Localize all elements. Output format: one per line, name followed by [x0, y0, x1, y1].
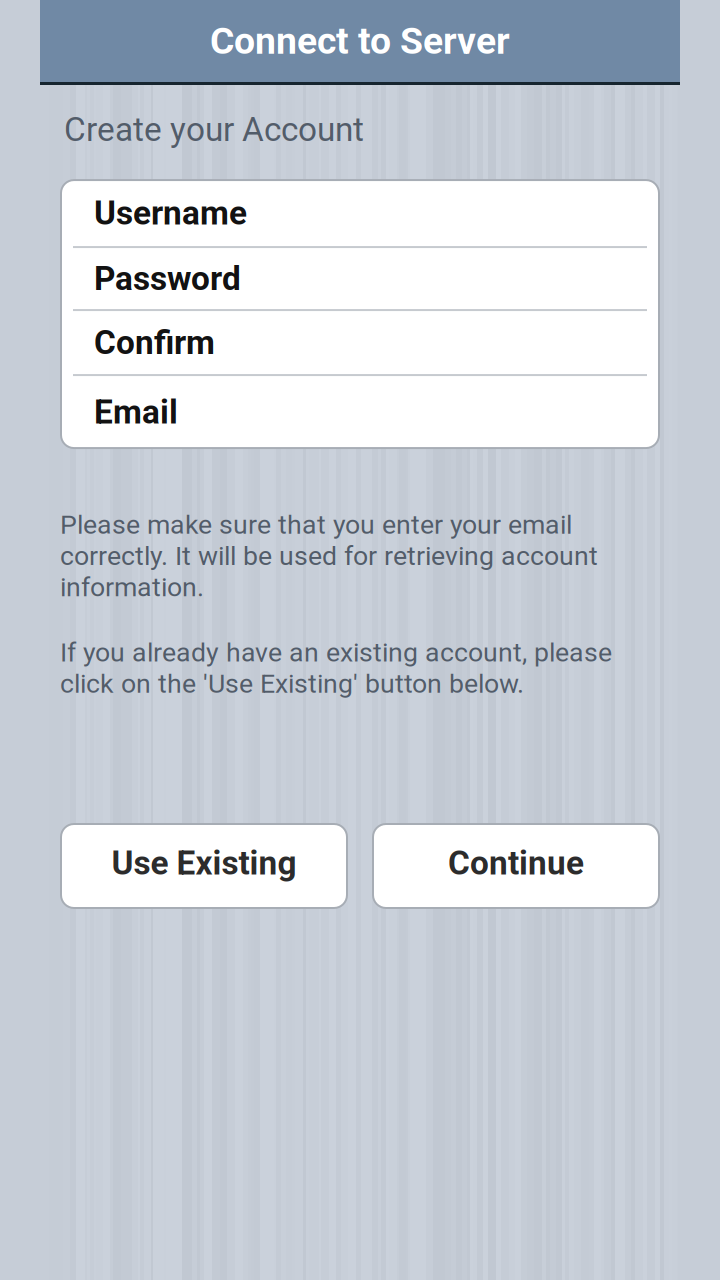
- staticText: Use Existing: [111, 843, 296, 883]
- button[interactable]: Username: [61, 180, 659, 246]
- staticText: Please make sure that you enter your ema…: [60, 509, 598, 603]
- staticText: Email: [94, 392, 178, 432]
- button[interactable]: Password: [61, 248, 659, 309]
- button[interactable]: Email: [61, 376, 659, 448]
- staticText: If you already have an existing account,…: [60, 637, 612, 699]
- button[interactable]: Continue: [373, 824, 659, 908]
- staticText: Create your Account: [64, 110, 364, 149]
- button[interactable]: Use Existing: [61, 824, 347, 908]
- staticText: Continue: [448, 843, 584, 883]
- staticText: Confirm: [94, 323, 215, 362]
- staticText: Username: [94, 193, 247, 233]
- button[interactable]: Confirm: [61, 311, 659, 374]
- staticText: Password: [94, 259, 241, 298]
- staticText: Connect to Server: [210, 19, 510, 63]
